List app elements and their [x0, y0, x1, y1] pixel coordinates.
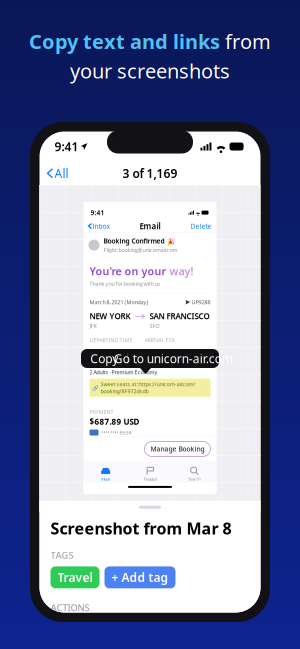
staticText: Search — [188, 476, 200, 482]
staticText: Copy — [90, 350, 118, 366]
staticText: from — [220, 28, 271, 55]
staticText: $687.89 USD — [89, 416, 139, 427]
staticText: UP9288 — [190, 299, 210, 306]
button[interactable]: Travel — [50, 566, 99, 588]
button[interactable]: Go to unicorn-air.com — [128, 349, 219, 368]
staticText: 3 of 1,169 — [122, 165, 177, 181]
staticText: 16:40 PM — [144, 346, 184, 358]
staticText: Manage Booking — [150, 445, 204, 453]
staticText: 🔗 — [91, 385, 98, 391]
staticText: Email — [139, 221, 160, 231]
staticText: Thank you for booking with us — [89, 280, 160, 287]
staticText: ACTIONS — [50, 601, 89, 614]
button[interactable]: All — [39, 165, 68, 181]
staticText: way! — [169, 264, 193, 278]
staticText: Flagged — [143, 476, 156, 482]
staticText: March 8, 2021 (Monday) — [89, 299, 148, 306]
staticText: 2 Adults · Premium Economy — [89, 368, 157, 376]
staticText: 9:41 — [54, 138, 78, 154]
staticText: PAYMENT — [89, 408, 113, 415]
staticText: •••• •••• 8934 — [101, 429, 131, 436]
staticText: Flight: booking@unicornair.com — [103, 246, 177, 253]
staticText: DEPARTING TIME — [89, 337, 132, 344]
staticText: JFK — [89, 322, 96, 330]
button[interactable]: + Add tag — [104, 566, 175, 588]
staticText: 9:41 — [90, 208, 104, 217]
staticText: 13:55 PM — [89, 346, 129, 358]
staticText: TAGS — [50, 549, 73, 561]
button[interactable]: Search — [172, 466, 216, 482]
staticText: Booking Confirmed 🎉 — [103, 237, 174, 245]
staticText: Inbox — [101, 476, 110, 482]
staticText: NEW YORK — [89, 311, 130, 321]
staticText: You're on your — [89, 264, 169, 278]
staticText: Copy text and links — [29, 28, 220, 55]
staticText: + Add tag — [111, 569, 168, 585]
button[interactable]: Inbox — [83, 466, 128, 482]
staticText: SAN FRANCISCO — [149, 311, 209, 321]
staticText: Go to unicorn-air.com — [114, 350, 233, 366]
staticText: All — [54, 165, 68, 181]
staticText: your screenshots — [70, 58, 230, 84]
staticText: Screenshot from Mar 8 — [50, 518, 231, 539]
staticText: Inbox — [92, 222, 110, 231]
staticText: Sweet seats at: https://unicorn-air.com/… — [100, 381, 195, 395]
staticText: ARRIVAL ETA — [144, 337, 174, 344]
button[interactable]: Copy — [81, 349, 127, 368]
button[interactable]: Manage Booking — [144, 442, 210, 456]
button[interactable]: Flagged — [128, 466, 172, 482]
staticText: SFO — [149, 322, 159, 330]
staticText: Delete — [190, 222, 211, 231]
staticText: Travel — [57, 569, 92, 585]
